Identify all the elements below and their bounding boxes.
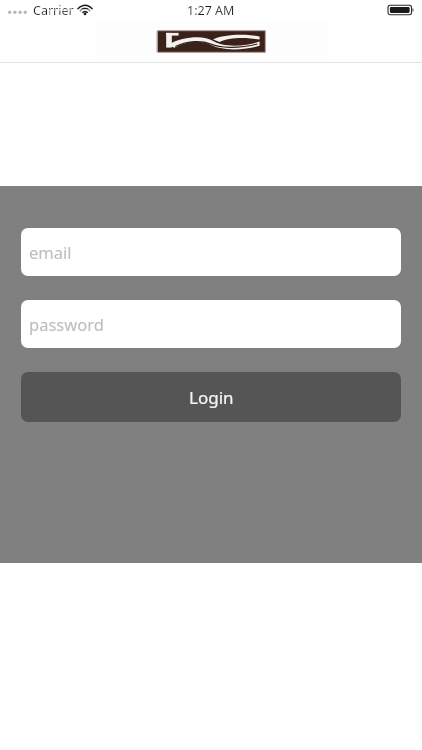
staticText: email xyxy=(29,241,72,263)
staticText: password xyxy=(29,313,104,335)
staticText: Login xyxy=(189,386,234,409)
staticText: Carrier xyxy=(33,2,74,19)
staticText: 1:27 AM xyxy=(187,2,235,19)
button[interactable]: Login xyxy=(21,372,401,422)
button[interactable]: password xyxy=(21,300,401,348)
button[interactable]: email xyxy=(21,228,401,276)
button[interactable]: bc logo xyxy=(157,31,265,52)
